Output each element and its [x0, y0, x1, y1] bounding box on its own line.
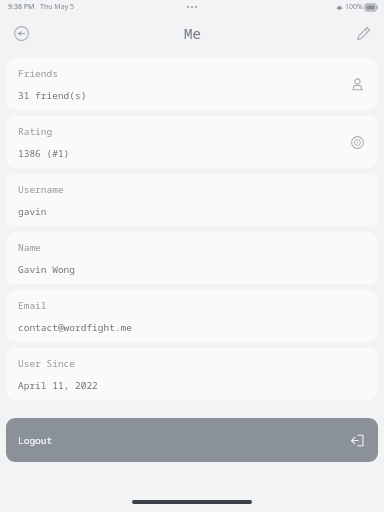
staticText: Rating — [18, 125, 53, 138]
staticText: gavin — [18, 205, 47, 218]
staticText: 100% — [345, 2, 363, 12]
button[interactable]: User Since — [6, 348, 378, 400]
staticText: Username — [18, 183, 64, 196]
staticText: Logout — [18, 434, 53, 447]
button[interactable]: Back — [6, 18, 36, 48]
button[interactable]: Name — [6, 232, 378, 284]
staticText: 1386 (#1) — [18, 147, 70, 160]
staticText: Gavin Wong — [18, 263, 76, 276]
button[interactable]: Email — [6, 290, 378, 342]
button[interactable]: Edit profile — [348, 18, 378, 48]
staticText: Friends — [18, 67, 58, 80]
staticText: Thu May 5 — [40, 2, 75, 12]
staticText: contact@wordfight.me — [18, 321, 133, 334]
staticText: 31 friend(s) — [18, 89, 87, 102]
staticText: April 11, 2022 — [18, 379, 98, 392]
button[interactable]: Username — [6, 174, 378, 226]
staticText: Email — [18, 299, 47, 312]
button[interactable]: Rating — [6, 116, 378, 168]
staticText: User Since — [18, 357, 76, 370]
staticText: Me — [184, 24, 201, 43]
button[interactable]: Friends — [6, 58, 378, 110]
staticText: 9:38 PM — [8, 2, 35, 12]
staticText: Name — [18, 241, 41, 254]
button[interactable]: Logout — [6, 418, 378, 462]
